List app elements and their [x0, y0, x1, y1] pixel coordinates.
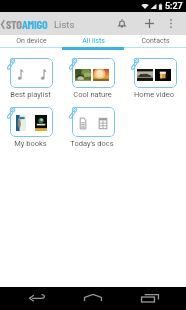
- button[interactable]: Today's docs: [62, 107, 124, 148]
- staticText: 5:27: [165, 1, 183, 12]
- staticText: Today's docs: [70, 139, 114, 148]
- button[interactable]: On device: [0, 35, 62, 43]
- button[interactable]: My books: [0, 107, 62, 148]
- button[interactable]: More options: [164, 12, 178, 35]
- staticText: All lists: [82, 37, 105, 45]
- button[interactable]: Notifications: [109, 12, 135, 35]
- button[interactable]: Cool nature: [62, 58, 124, 99]
- button[interactable]: All lists: [62, 35, 124, 43]
- button[interactable]: Back: [17, 286, 57, 309]
- staticText: Contacts: [141, 37, 170, 45]
- staticText: Lists: [54, 19, 75, 30]
- button[interactable]: Recents: [130, 286, 170, 309]
- staticText: Home video: [134, 90, 174, 99]
- button[interactable]: Contacts: [124, 35, 186, 43]
- button[interactable]: Home video: [124, 58, 186, 99]
- staticText: STO: [6, 17, 22, 31]
- button[interactable]: Best playlist: [0, 58, 62, 99]
- staticText: My books: [14, 139, 47, 148]
- staticText: On device: [16, 37, 47, 45]
- button[interactable]: Add: [135, 12, 164, 35]
- button[interactable]: Home: [73, 286, 113, 309]
- staticText: AMIGO: [22, 17, 48, 31]
- staticText: Best playlist: [10, 90, 51, 99]
- staticText: Cool nature: [73, 90, 112, 99]
